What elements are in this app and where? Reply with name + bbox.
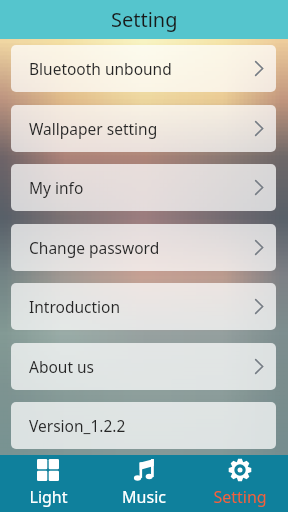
- staticText: About us: [29, 356, 95, 377]
- button[interactable]: Light: [0, 455, 96, 512]
- button[interactable]: Bluetooth unbound: [11, 45, 276, 92]
- staticText: Introduction: [29, 296, 121, 317]
- staticText: My info: [29, 177, 84, 198]
- other: Setting: [229, 459, 251, 481]
- staticText: Music: [122, 486, 166, 508]
- staticText: Version_1.2.2: [29, 415, 126, 436]
- button[interactable]: Change password: [11, 224, 276, 271]
- button[interactable]: Wallpaper setting: [11, 105, 276, 152]
- staticText: Wallpaper setting: [29, 118, 158, 139]
- button[interactable]: Introduction: [11, 283, 276, 330]
- staticText: Change password: [29, 237, 160, 258]
- staticText: Setting: [111, 6, 178, 33]
- staticText: Setting: [213, 486, 267, 508]
- other: Music: [133, 459, 155, 481]
- staticText: Light: [29, 486, 68, 508]
- staticText: Bluetooth unbound: [29, 58, 172, 79]
- button[interactable]: About us: [11, 343, 276, 390]
- other: Light: [37, 459, 59, 481]
- button[interactable]: My info: [11, 164, 276, 211]
- button[interactable]: Setting: [192, 455, 288, 512]
- button[interactable]: Music: [96, 455, 192, 512]
- button[interactable]: Version_1.2.2: [11, 402, 276, 449]
